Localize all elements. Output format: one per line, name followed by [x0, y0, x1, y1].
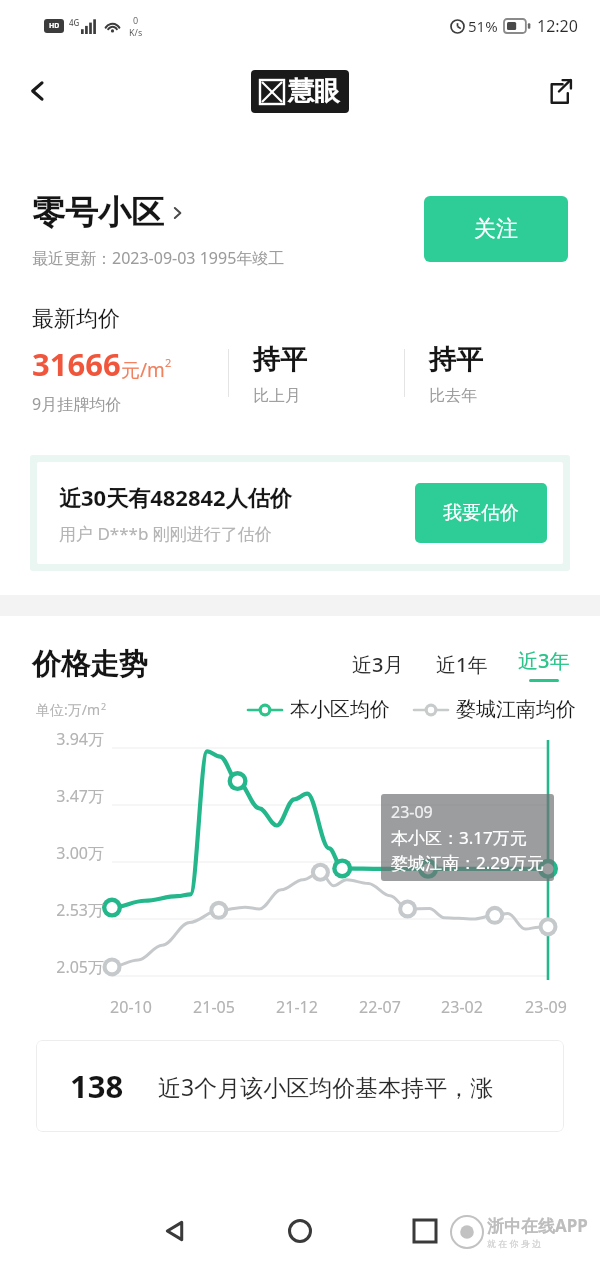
staticText: 2.05万 — [24, 956, 104, 978]
staticText: 23-09 — [391, 801, 433, 823]
staticText: 2.53万 — [24, 899, 104, 921]
staticText: 21-05 — [181, 996, 247, 1018]
button[interactable]: 慧眼 — [260, 75, 340, 108]
staticText: 最新均价 — [32, 305, 120, 333]
staticText: 23-09 — [513, 996, 579, 1018]
staticText: 价格走势 — [32, 646, 148, 683]
staticText: 31666 — [32, 343, 121, 385]
staticText: 最近更新：2023-09-03 1995年竣工 — [32, 247, 285, 269]
staticText: 20-10 — [98, 996, 164, 1018]
staticText: 婺城江南均价 — [456, 697, 576, 722]
staticText: 比去年 — [429, 386, 477, 406]
staticText: 22-07 — [347, 996, 413, 1018]
staticText: 138 — [70, 1065, 124, 1107]
button[interactable]: 近3月 — [346, 647, 410, 682]
staticText: 用户 D***b 刚刚进行了估价 — [59, 522, 272, 545]
staticText: HD — [49, 21, 60, 31]
staticText: 51% — [468, 16, 498, 36]
button[interactable]: 我要估价 — [415, 483, 547, 543]
button[interactable]: Back — [145, 1201, 205, 1261]
staticText: 近3月 — [352, 651, 404, 678]
button[interactable]: 近1年 — [430, 647, 494, 682]
button[interactable]: 本小区均价 — [248, 697, 390, 722]
button[interactable]: 婺城江南均价 — [414, 697, 576, 722]
staticText: 浙中在线APP — [487, 1214, 588, 1237]
button[interactable]: Home — [270, 1201, 330, 1261]
staticText: 本小区均价 — [290, 697, 390, 722]
staticText: 元/m — [121, 357, 165, 383]
staticText: 近3年 — [518, 647, 570, 674]
staticText: 本小区：3.17万元 — [391, 826, 527, 849]
staticText: 2 — [165, 355, 172, 370]
staticText: 比上月 — [253, 386, 301, 406]
button[interactable]: 138 — [36, 1040, 564, 1132]
staticText: 21-12 — [264, 996, 330, 1018]
staticText: 持平 — [253, 343, 307, 377]
staticText: 9月挂牌均价 — [32, 393, 122, 415]
staticText: 23-02 — [429, 996, 495, 1018]
button[interactable]: 关注 — [424, 196, 568, 262]
staticText: 单位:万/m — [36, 700, 101, 719]
staticText: 3.47万 — [24, 785, 104, 807]
staticText: 持平 — [429, 343, 483, 377]
staticText: 我要估价 — [443, 501, 519, 525]
button[interactable]: Back — [12, 65, 64, 117]
staticText: 近3个月该小区均价基本持平，涨 — [158, 1071, 494, 1102]
staticText: 0 — [133, 14, 139, 26]
button[interactable]: Recent apps — [395, 1201, 455, 1261]
staticText: 2 — [101, 700, 107, 712]
staticText: 4G — [69, 17, 80, 28]
staticText: 近1年 — [436, 651, 488, 678]
staticText: 就 在 你 身 边 — [487, 1237, 542, 1249]
button[interactable]: 近30天有482842人估价 — [37, 462, 563, 564]
staticText: 关注 — [474, 215, 518, 243]
button[interactable]: 零号小区 — [32, 192, 183, 234]
button[interactable]: Share — [534, 65, 586, 117]
staticText: 3.94万 — [24, 728, 104, 750]
staticText: 零号小区 — [32, 192, 164, 234]
staticText: 12:20 — [537, 15, 578, 37]
staticText: 3.00万 — [24, 842, 104, 864]
staticText: 近30天有482842人估价 — [59, 482, 292, 512]
button[interactable]: 近3年 — [514, 647, 574, 682]
staticText: 婺城江南：2.29万元 — [391, 851, 544, 874]
staticText: 慧眼 — [288, 75, 340, 108]
staticText: K/s — [129, 26, 143, 38]
